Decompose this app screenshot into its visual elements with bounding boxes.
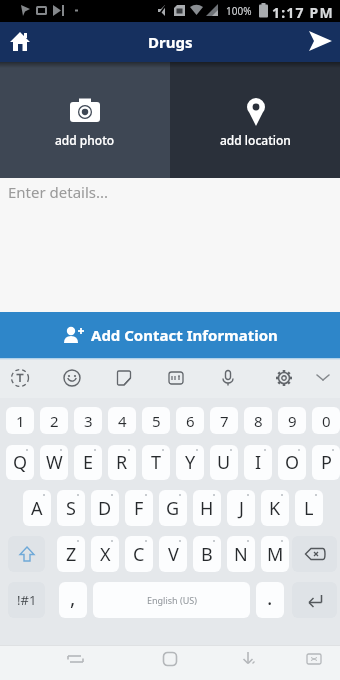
staticText: 9 [288,411,297,431]
button[interactable] [110,364,138,392]
staticText: 7 [220,411,229,431]
button[interactable]: V [159,536,187,572]
button[interactable] [58,641,92,676]
button[interactable]: add location [170,62,340,178]
button[interactable]: C [125,536,153,572]
button[interactable]: 4 [108,407,136,434]
button[interactable]: D [91,490,119,526]
button[interactable] [8,536,45,572]
button[interactable]: 1 [6,407,34,434]
button[interactable]: N [227,536,255,572]
button[interactable]: G [159,490,187,526]
staticText: I [255,450,262,475]
staticText: add photo [55,132,115,148]
button[interactable]: X [91,536,119,572]
staticText: 1:17 PM [272,3,334,22]
button[interactable]: 7 [210,407,238,434]
button[interactable]: 0 [312,407,340,434]
button[interactable]: W [40,445,68,480]
staticText: N [234,542,248,567]
button[interactable]: L [295,490,323,526]
staticText: add location [220,132,291,148]
staticText: H [200,496,214,521]
staticText: G [166,496,180,521]
staticText: S [66,496,76,521]
button[interactable]: 2 [40,407,68,434]
staticText: Q [13,450,28,475]
staticText: 4 [118,411,127,431]
button[interactable]: Y [176,445,204,480]
staticText: !#1 [17,591,37,609]
staticText: Drugs [148,32,193,52]
staticText: Z [66,542,77,567]
button[interactable] [231,641,265,676]
button[interactable]: F [125,490,153,526]
button[interactable]: T [142,445,170,480]
staticText: E [83,450,94,475]
staticText: C [133,542,145,567]
staticText: P [321,450,332,475]
button[interactable]: add photo [0,62,170,178]
button[interactable]: E [74,445,102,480]
button[interactable]: 6 [176,407,204,434]
button[interactable]: . [256,582,284,618]
staticText: A [31,496,43,521]
button[interactable] [304,26,336,58]
button[interactable] [292,536,337,572]
button[interactable]: 8 [244,407,272,434]
button[interactable]: Q [6,445,34,480]
button[interactable]: U [210,445,238,480]
button[interactable]: 3 [74,407,102,434]
button[interactable] [298,641,330,676]
button[interactable]: H [193,490,221,526]
button[interactable]: English (US) [93,582,250,618]
staticText: T [151,450,162,475]
button[interactable]: J [227,490,255,526]
button[interactable] [6,364,34,392]
button[interactable]: R [108,445,136,480]
button[interactable]: 5 [142,407,170,434]
button[interactable]: I [244,445,272,480]
staticText: 8 [254,411,263,431]
button[interactable]: S [57,490,85,526]
button[interactable]: A [23,490,51,526]
button[interactable] [6,28,34,56]
staticText: K [269,496,281,521]
button[interactable]: , [59,582,87,618]
staticText: 5 [152,411,161,431]
staticText: D [98,496,112,521]
button[interactable] [310,364,336,390]
staticText: R [116,450,128,475]
button[interactable] [153,641,187,676]
button[interactable]: P [312,445,340,480]
staticText: J [239,496,244,521]
staticText: . [267,584,273,611]
button[interactable]: B [193,536,221,572]
button[interactable]: K [261,490,289,526]
button[interactable]: O [278,445,306,480]
staticText: Y [185,450,196,475]
staticText: F [134,496,144,521]
staticText: , [70,584,76,611]
button[interactable] [214,364,242,392]
staticText: B [201,542,213,567]
staticText: 6 [186,411,195,431]
button[interactable] [58,364,86,392]
button[interactable]: 9 [278,407,306,434]
button[interactable] [270,364,298,392]
staticText: W [46,450,63,475]
button[interactable] [292,582,337,618]
button[interactable] [162,364,190,392]
staticText: V [168,542,179,567]
button[interactable]: !#1 [8,582,45,618]
staticText: 2 [50,411,59,431]
button[interactable]: Z [57,536,85,572]
staticText: 1 [16,411,25,431]
button[interactable]: Enter details... [0,178,340,312]
staticText: Enter details... [8,182,109,202]
button[interactable]: Add Contact Information [0,312,340,358]
button[interactable]: M [261,536,289,572]
staticText: U [217,450,231,475]
staticText: 0 [322,411,331,431]
staticText: Add Contact Information [91,325,278,345]
